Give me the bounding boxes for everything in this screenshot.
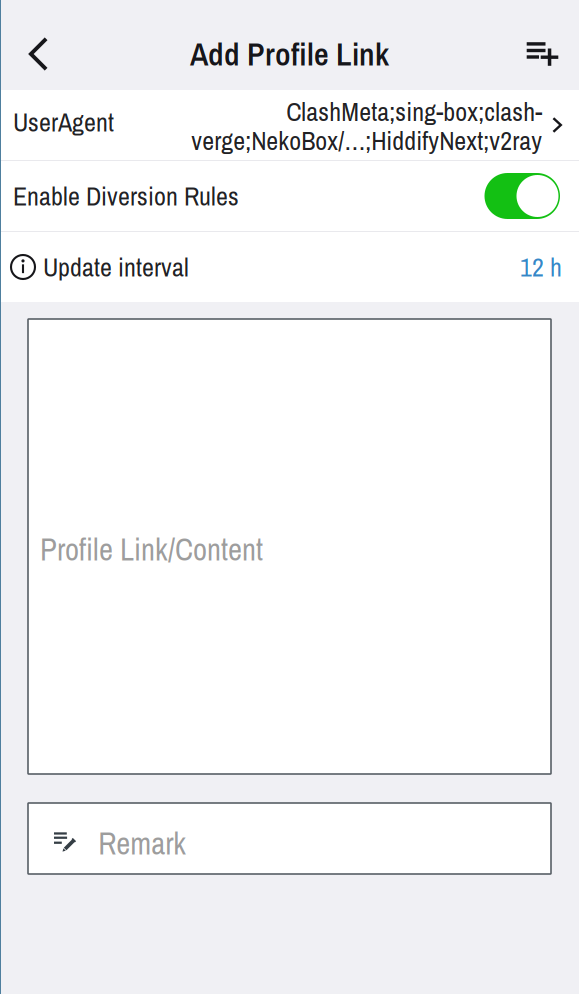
staticText: UserAgent [13, 104, 114, 139]
staticText: Update interval [43, 249, 189, 284]
staticText: Remark [98, 823, 186, 864]
button[interactable]: Add profile from clipboard [506, 9, 579, 99]
button[interactable]: UserAgent [0, 90, 579, 160]
staticText: Profile Link/Content [40, 529, 263, 570]
button[interactable]: Enable Diversion Rules [0, 161, 579, 231]
staticText: ClashMeta;sing-box;clash- [286, 94, 542, 129]
button[interactable]: Back [0, 9, 67, 99]
staticText: 12 h [520, 249, 562, 284]
staticText: verge;NekoBox/…;HiddifyNext;v2ray [191, 123, 542, 158]
staticText: Enable Diversion Rules [13, 178, 239, 213]
staticText: Add Profile Link [190, 32, 389, 75]
button[interactable]: Profile Link/Content [28, 319, 551, 774]
button[interactable]: Update interval [0, 232, 579, 302]
button[interactable]: Remark [28, 803, 551, 874]
